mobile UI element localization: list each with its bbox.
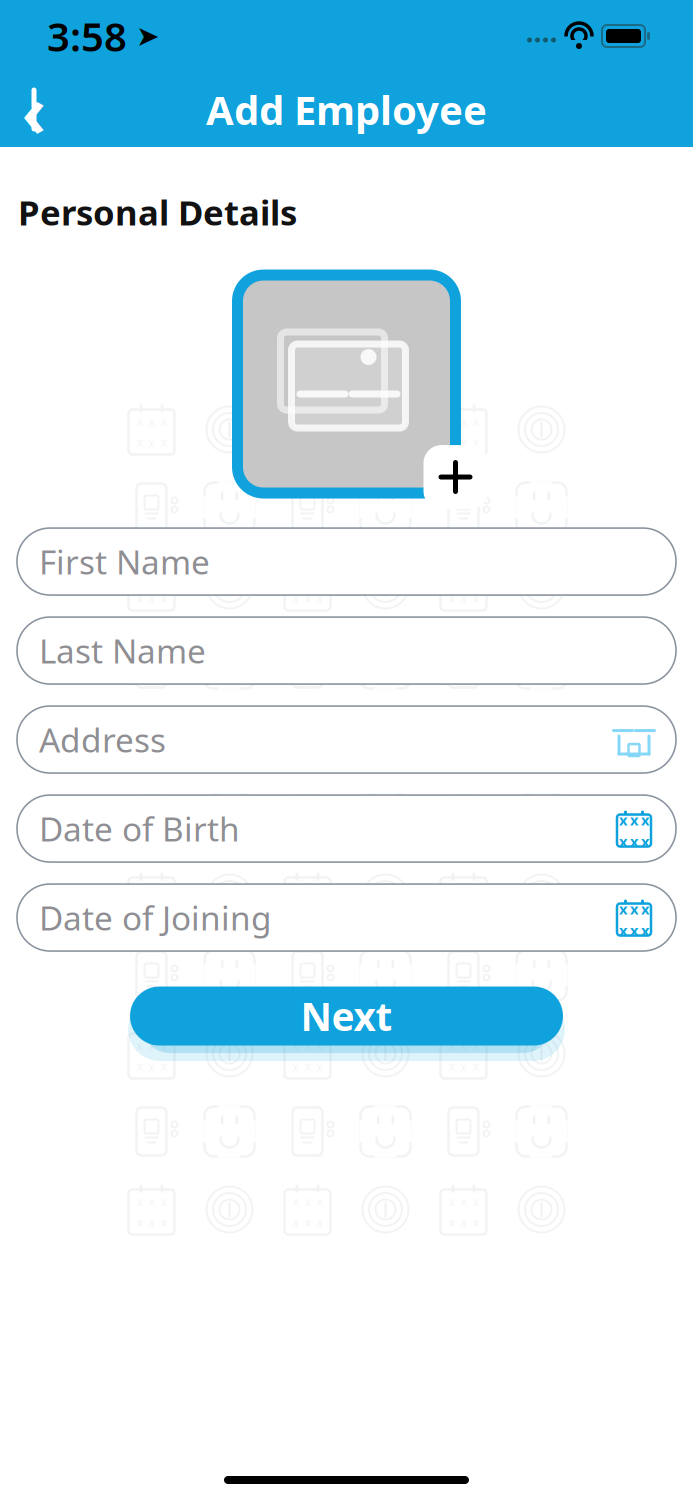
staticText: x xyxy=(316,590,322,606)
staticText: x xyxy=(148,1038,154,1053)
staticText: x xyxy=(160,1038,166,1053)
staticText: x xyxy=(292,1214,298,1230)
staticText: x xyxy=(136,1214,142,1230)
staticText: x xyxy=(460,590,466,606)
staticText: x xyxy=(160,726,166,741)
staticText: x xyxy=(641,920,649,940)
staticText: x xyxy=(619,810,627,830)
staticText: x xyxy=(641,831,649,851)
staticText: x xyxy=(304,1214,310,1230)
staticText: x xyxy=(160,590,166,606)
staticText: x xyxy=(448,882,454,897)
staticText: Address xyxy=(39,717,166,762)
staticText: x xyxy=(148,902,154,918)
staticText: x xyxy=(136,1194,142,1209)
button[interactable]: Back xyxy=(4,79,64,139)
staticText: x xyxy=(460,1214,466,1230)
staticText: x xyxy=(160,1194,166,1209)
staticText: x xyxy=(316,882,322,897)
staticText: x xyxy=(292,590,298,606)
button[interactable]: Date of Birth xyxy=(17,795,676,862)
staticText: x xyxy=(472,1194,478,1209)
staticText: x xyxy=(460,434,466,450)
staticText: x xyxy=(292,882,298,897)
staticText: x xyxy=(292,414,298,429)
staticText: First Name xyxy=(39,539,210,584)
staticText: x xyxy=(304,1038,310,1053)
staticText: ‹ xyxy=(21,62,46,157)
staticText: x xyxy=(630,899,638,919)
staticText: x xyxy=(160,746,166,762)
staticText: 3:58 xyxy=(47,9,127,62)
staticText: x xyxy=(630,810,638,830)
staticText: x xyxy=(160,882,166,897)
staticText: x xyxy=(641,810,649,830)
staticText: x xyxy=(630,831,638,851)
staticText: x xyxy=(316,1038,322,1053)
staticText: x xyxy=(160,414,166,429)
staticText: x xyxy=(472,1038,478,1053)
staticText: x xyxy=(641,899,649,919)
staticText: x xyxy=(460,1058,466,1074)
button[interactable]: Date of Joining xyxy=(17,884,676,951)
staticText: x xyxy=(304,1058,310,1074)
staticText: x xyxy=(136,414,142,429)
staticText: x xyxy=(292,1058,298,1074)
staticText: x xyxy=(472,1214,478,1230)
button[interactable]: Last Name xyxy=(17,617,676,684)
button[interactable]: Address xyxy=(17,706,676,773)
staticText: x xyxy=(448,1038,454,1053)
staticText: x xyxy=(619,831,627,851)
staticText: x xyxy=(304,1194,310,1209)
staticText: x xyxy=(472,882,478,897)
staticText: x xyxy=(160,902,166,918)
staticText: x xyxy=(448,1194,454,1209)
staticText: x xyxy=(148,1214,154,1230)
staticText: Date of Joining xyxy=(39,895,272,940)
staticText: x xyxy=(136,882,142,897)
staticText: x xyxy=(316,1194,322,1209)
staticText: x xyxy=(472,590,478,606)
button[interactable]: First Name xyxy=(17,528,676,595)
button[interactable]: Next xyxy=(130,986,563,1045)
staticText: x xyxy=(148,434,154,450)
staticText: x xyxy=(619,899,627,919)
staticText: x xyxy=(448,1058,454,1074)
staticText: x xyxy=(448,590,454,606)
staticText: Add Employee xyxy=(206,83,487,136)
staticText: x xyxy=(148,1194,154,1209)
staticText: x xyxy=(448,414,454,429)
staticText: x xyxy=(148,746,154,762)
staticText: x xyxy=(136,726,142,741)
staticText: x xyxy=(148,1058,154,1074)
staticText: x xyxy=(460,1194,466,1209)
staticText: x xyxy=(448,434,454,450)
staticText: x xyxy=(630,920,638,940)
staticText: x xyxy=(292,1194,298,1209)
staticText: Last Name xyxy=(39,628,206,673)
staticText: x xyxy=(148,570,154,585)
staticText: x xyxy=(160,1214,166,1230)
staticText: x xyxy=(316,1058,322,1074)
staticText: x xyxy=(148,590,154,606)
button[interactable]: Add photo xyxy=(205,259,487,509)
staticText: Personal Details xyxy=(18,189,297,235)
